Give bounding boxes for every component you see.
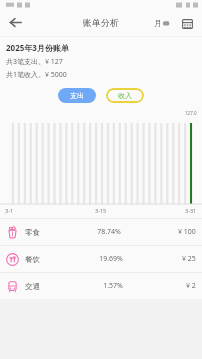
staticText: 1.57% xyxy=(40,281,186,291)
staticText: 月 xyxy=(154,18,162,28)
staticText: 3-15 xyxy=(95,207,107,214)
staticText: ¥ 2 xyxy=(186,281,196,291)
staticText: 账单分析 xyxy=(83,17,119,28)
staticText: 19.69% xyxy=(40,254,182,264)
button[interactable]: 零食 xyxy=(0,219,202,245)
staticText: 共3笔支出。¥ 127 xyxy=(6,57,63,67)
staticText: 共1笔收入。¥ 5000 xyxy=(6,70,67,80)
button[interactable]: Calendar xyxy=(177,13,197,33)
staticText: 收入 xyxy=(118,91,132,100)
button[interactable]: 支出 xyxy=(58,88,96,103)
staticText: 78.74% xyxy=(40,227,178,237)
staticText: 3-31 xyxy=(185,207,197,214)
staticText: 交通 xyxy=(25,282,40,291)
button[interactable]: 餐饮 xyxy=(0,246,202,272)
staticText: 餐饮 xyxy=(25,255,40,264)
staticText: ¥ 25 xyxy=(182,254,196,264)
button[interactable]: Back xyxy=(0,9,30,36)
staticText: 3-1 xyxy=(5,207,14,214)
staticText: 127.0 xyxy=(185,110,197,116)
staticText: ¥ 100 xyxy=(178,227,196,237)
staticText: 2025年3月份账单 xyxy=(6,42,69,53)
button[interactable]: 月 xyxy=(151,15,173,31)
button[interactable]: 收入 xyxy=(106,88,144,103)
staticText: 零食 xyxy=(25,228,40,237)
staticText: 支出 xyxy=(70,91,84,100)
button[interactable]: 交通 xyxy=(0,273,202,299)
